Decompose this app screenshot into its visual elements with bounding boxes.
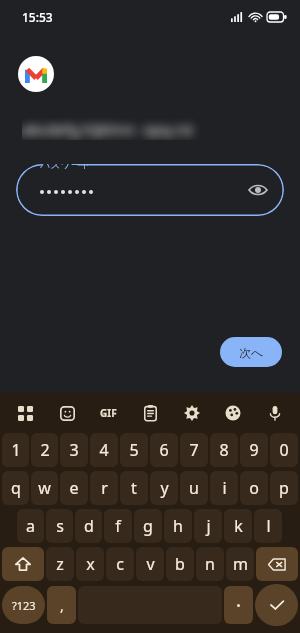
staticText: f xyxy=(115,515,121,537)
staticText: q xyxy=(11,477,21,499)
staticText: j xyxy=(206,515,211,537)
staticText: u xyxy=(189,477,199,499)
staticText: 1 xyxy=(11,439,21,461)
staticText: パスワード xyxy=(40,164,91,171)
button[interactable]: Backspace xyxy=(256,547,298,581)
staticText: w xyxy=(38,477,51,499)
staticText: t xyxy=(131,477,137,499)
button[interactable]: テーマ xyxy=(218,398,248,428)
staticText: 0 xyxy=(279,439,289,461)
staticText: y xyxy=(160,477,169,499)
button[interactable]: ステッカー xyxy=(52,398,82,428)
staticText: b xyxy=(175,553,185,575)
button[interactable]: 設定 xyxy=(177,398,207,428)
button[interactable]: t xyxy=(120,471,148,505)
button[interactable]: p xyxy=(270,471,298,505)
button[interactable]: b xyxy=(166,547,194,581)
staticText: p xyxy=(279,477,289,499)
staticText: 2 xyxy=(40,439,50,461)
staticText: abcdefg.hijklmn opq.rst xyxy=(22,119,194,139)
button[interactable]: Shift xyxy=(2,547,44,581)
staticText: , xyxy=(60,596,64,615)
staticText: z xyxy=(56,553,64,575)
staticText: 6 xyxy=(159,439,169,461)
button[interactable]: w xyxy=(31,471,58,505)
button[interactable]: , xyxy=(47,586,76,624)
button[interactable]: 確定 xyxy=(255,584,298,626)
staticText: g xyxy=(143,515,153,537)
staticText: 次へ xyxy=(239,345,264,360)
button[interactable]: n xyxy=(196,547,224,581)
button[interactable]: 9 xyxy=(240,433,268,467)
button[interactable]: z xyxy=(46,547,74,581)
staticText: v xyxy=(146,553,155,575)
button[interactable]: 3 xyxy=(60,433,88,467)
button[interactable]: ?123 xyxy=(2,586,45,624)
staticText: l xyxy=(266,515,271,537)
button[interactable]: 4 xyxy=(90,433,118,467)
button[interactable]: r xyxy=(90,471,118,505)
staticText: r xyxy=(101,477,108,499)
button[interactable]: u xyxy=(180,471,208,505)
staticText: ?123 xyxy=(12,598,36,613)
staticText: 15:53 xyxy=(22,9,53,25)
staticText: 3 xyxy=(69,439,79,461)
button[interactable]: i xyxy=(210,471,238,505)
button[interactable]: d xyxy=(75,509,102,543)
button[interactable]: f xyxy=(104,509,132,543)
button[interactable]: k xyxy=(224,509,252,543)
staticText: k xyxy=(234,515,243,537)
button[interactable]: パスワードを表示 xyxy=(244,176,272,204)
staticText: 8 xyxy=(219,439,229,461)
staticText: GIF xyxy=(100,406,117,420)
staticText: c xyxy=(116,553,124,575)
button[interactable]: l xyxy=(254,509,282,543)
button[interactable]: 1 xyxy=(2,433,29,467)
button[interactable]: 2 xyxy=(31,433,58,467)
button[interactable]: q xyxy=(2,471,29,505)
staticText: 5 xyxy=(129,439,139,461)
button[interactable]: GIF xyxy=(93,398,123,428)
button[interactable]: アプリ xyxy=(10,398,40,428)
button[interactable] xyxy=(224,586,253,624)
staticText: n xyxy=(205,553,215,575)
button[interactable]: 8 xyxy=(210,433,238,467)
staticText: 9 xyxy=(249,439,259,461)
button[interactable]: o xyxy=(240,471,268,505)
staticText: i xyxy=(222,477,227,499)
button[interactable]: 7 xyxy=(180,433,208,467)
button[interactable]: c xyxy=(106,547,134,581)
button[interactable]: 次へ xyxy=(220,337,282,367)
button[interactable]: h xyxy=(164,509,192,543)
button[interactable]: m xyxy=(226,547,254,581)
button[interactable]: x xyxy=(76,547,104,581)
button[interactable]: パスワード xyxy=(16,164,284,216)
staticText: m xyxy=(233,553,248,575)
staticText: 7 xyxy=(189,439,199,461)
staticText: o xyxy=(249,477,259,499)
button[interactable]: 5 xyxy=(120,433,148,467)
staticText: d xyxy=(84,515,94,537)
button[interactable]: y xyxy=(150,471,178,505)
staticText: h xyxy=(173,515,183,537)
button[interactable]: g xyxy=(134,509,162,543)
button[interactable]: s xyxy=(46,509,73,543)
button[interactable]: 音声入力 xyxy=(260,398,290,428)
staticText: x xyxy=(86,553,95,575)
button[interactable]: 6 xyxy=(150,433,178,467)
staticText: a xyxy=(26,515,35,537)
button[interactable]: 0 xyxy=(270,433,298,467)
button[interactable]: e xyxy=(60,471,88,505)
staticText: 4 xyxy=(99,439,109,461)
button[interactable]: a xyxy=(17,509,44,543)
button[interactable]: クリップボード xyxy=(135,398,165,428)
button[interactable]: j xyxy=(194,509,222,543)
staticText: e xyxy=(69,477,79,499)
button[interactable]: v xyxy=(136,547,164,581)
staticText: s xyxy=(56,515,64,537)
